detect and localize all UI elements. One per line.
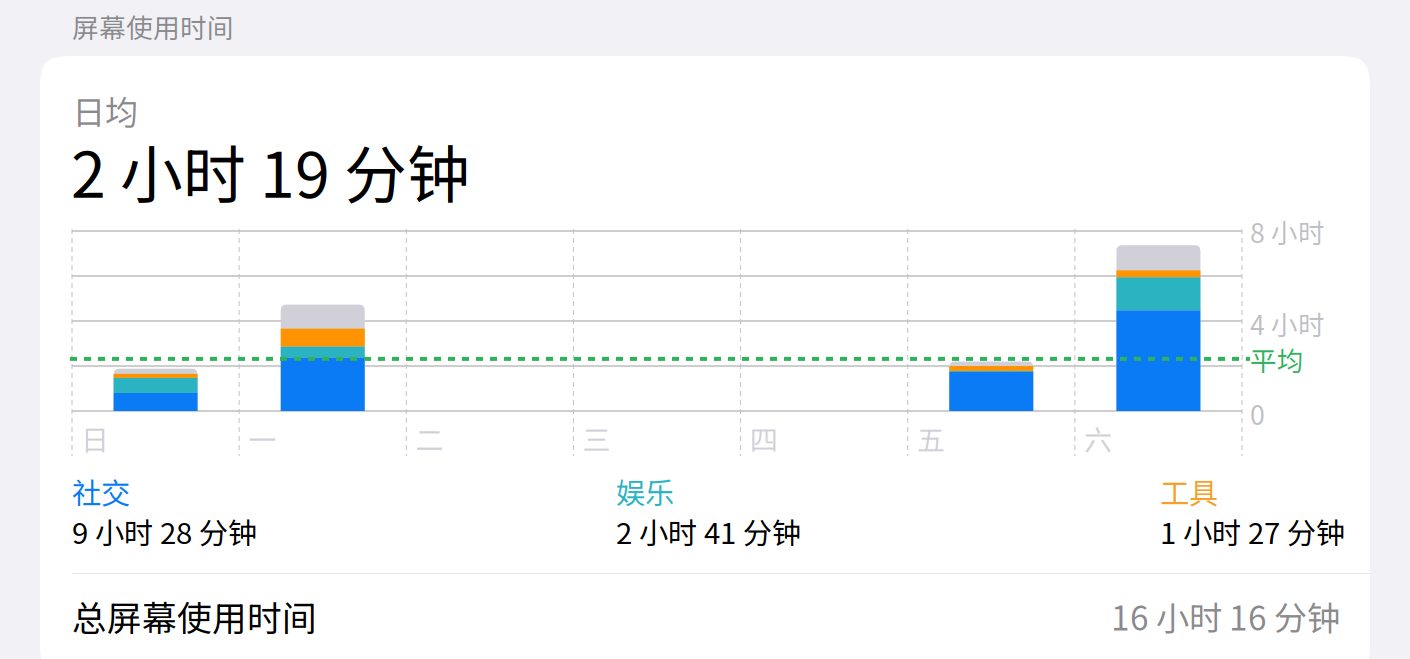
staticText: 日 bbox=[81, 418, 109, 458]
staticText: 六 bbox=[1084, 418, 1112, 458]
button[interactable]: 娱乐 bbox=[616, 470, 1160, 546]
staticText: 9 小时 28 分钟 bbox=[72, 510, 257, 552]
staticText: 总屏幕使用时间 bbox=[72, 591, 317, 641]
staticText: 二 bbox=[415, 418, 443, 458]
button[interactable]: 工具 bbox=[1160, 470, 1370, 546]
staticText: 2 小时 19 分钟 bbox=[71, 125, 470, 216]
staticText: 四 bbox=[750, 418, 778, 458]
button[interactable]: 社交 bbox=[72, 470, 616, 546]
staticText: 0 bbox=[1250, 394, 1265, 433]
button[interactable]: 总屏幕使用时间 bbox=[72, 584, 1340, 648]
staticText: 日均 bbox=[72, 86, 138, 134]
staticText: 2 小时 41 分钟 bbox=[616, 510, 801, 552]
staticText: 五 bbox=[917, 418, 945, 458]
staticText: 三 bbox=[582, 418, 610, 458]
staticText: 平均 bbox=[1250, 340, 1304, 379]
staticText: 一 bbox=[248, 418, 276, 458]
staticText: 工具 bbox=[1160, 470, 1218, 512]
staticText: 屏幕使用时间 bbox=[72, 7, 234, 46]
staticText: 1 小时 27 分钟 bbox=[1160, 510, 1345, 552]
staticText: 社交 bbox=[72, 470, 130, 512]
staticText: 4 小时 bbox=[1250, 304, 1325, 343]
staticText: 8 小时 bbox=[1250, 212, 1325, 251]
staticText: 16 小时 16 分钟 bbox=[1111, 592, 1340, 640]
staticText: 娱乐 bbox=[616, 470, 674, 512]
